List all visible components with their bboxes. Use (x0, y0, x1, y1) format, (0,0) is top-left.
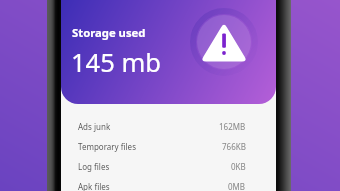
staticText: Ads junk (78, 121, 111, 132)
staticText: 0KB (231, 161, 246, 172)
staticText: Storage used (72, 25, 146, 40)
staticText: Temporary files (78, 141, 136, 152)
staticText: Apk files (78, 181, 110, 191)
button[interactable]: Temporary files (78, 136, 246, 156)
staticText: 766KB (222, 141, 246, 152)
staticText: 162MB (219, 121, 246, 132)
button[interactable]: Log files (78, 156, 246, 176)
button[interactable]: Apk files (78, 176, 246, 191)
button[interactable]: Ads junk (78, 116, 246, 136)
staticText: Log files (78, 161, 110, 172)
staticText: 145 mb (71, 45, 161, 80)
staticText: 0MB (228, 181, 246, 191)
